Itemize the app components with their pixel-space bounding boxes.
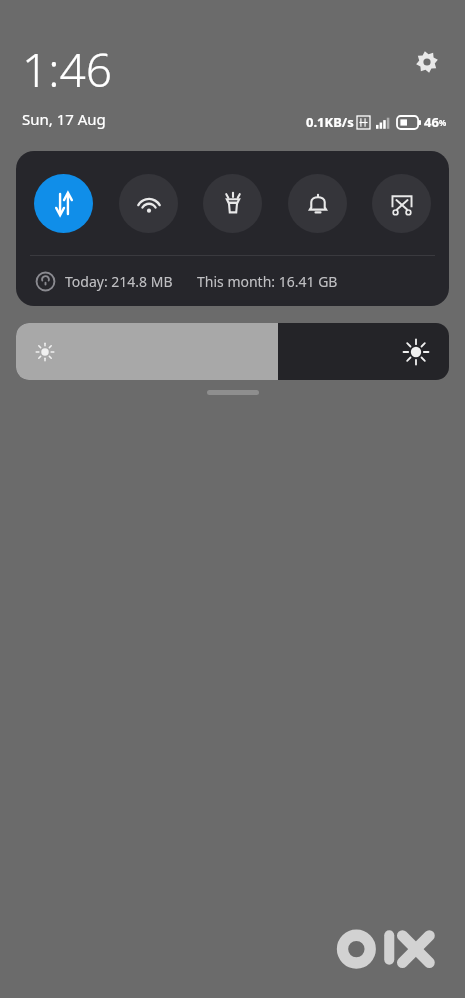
button[interactable]: Today: 214.8 MB [16,256,449,306]
staticText: 0.1KB/s [306,113,354,131]
staticText: This month: 16.41 GB [197,272,338,291]
button[interactable]: Settings [407,42,447,82]
staticText: Sun, 17 Aug [22,109,106,129]
staticText: 46 [424,113,439,131]
button[interactable]: Sound [288,174,347,233]
staticText: 1:46 [22,38,113,101]
button[interactable]: Flashlight [203,174,262,233]
staticText: % [439,117,447,128]
button[interactable]: Wi-Fi [119,174,178,233]
staticText: Today: 214.8 MB [65,272,173,291]
button[interactable]: Brightness [16,323,449,380]
button[interactable]: Screenshot [372,174,431,233]
button[interactable]: Mobile data [34,174,93,233]
